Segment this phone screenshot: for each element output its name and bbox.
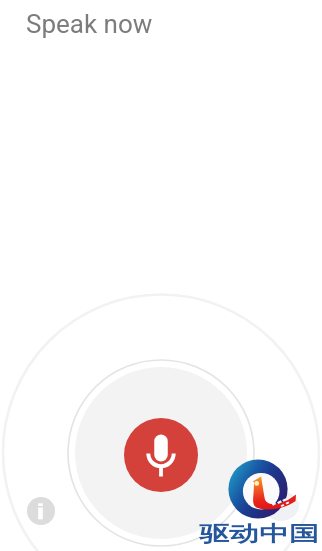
button[interactable]: Info xyxy=(27,497,55,525)
button[interactable]: Microphone xyxy=(124,418,198,492)
staticText: 驱动中国 xyxy=(199,521,319,547)
staticText: Speak now xyxy=(26,9,153,39)
